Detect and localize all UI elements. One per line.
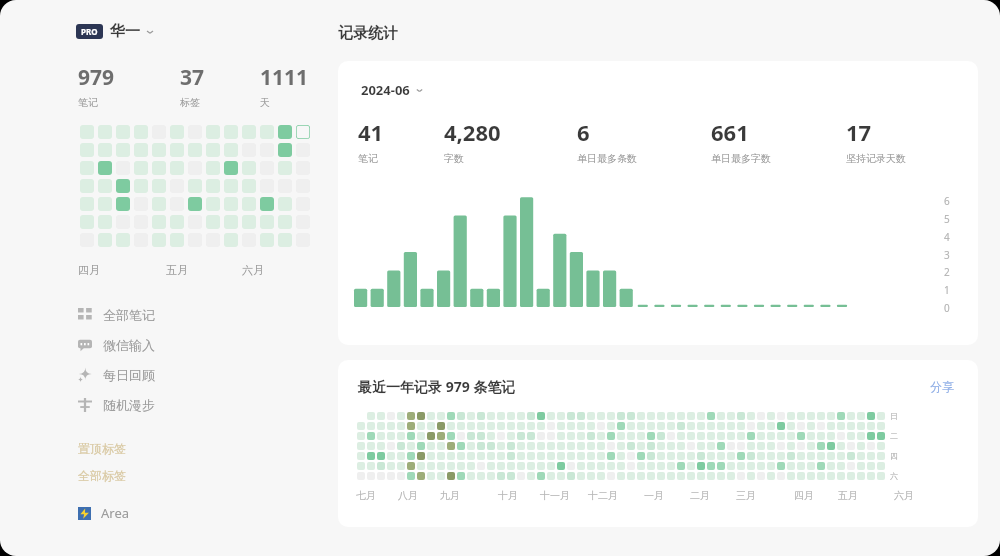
button[interactable]: 随机漫步 [70,390,290,420]
staticText: 二月 [690,489,710,502]
staticText: 单日最多条数 [577,152,637,165]
staticText: 十一月 [540,489,570,502]
staticText: 二 [890,431,898,440]
staticText: 六月 [894,489,914,502]
staticText: 十二月 [588,489,618,502]
button[interactable]: 全部笔记 [70,300,290,330]
button[interactable]: 置顶标签 [70,438,134,459]
staticText: 九月 [440,489,460,502]
staticText: 0 [944,301,950,315]
staticText: 1111 [260,63,309,92]
staticText: 全部笔记 [103,307,155,323]
staticText: 17 [846,117,872,147]
staticText: 1 [944,283,950,297]
staticText: 3 [944,248,950,262]
staticText: 坚持记录天数 [846,152,906,165]
staticText: 6 [577,117,590,147]
staticText: 八月 [398,489,418,502]
staticText: 记录统计 [338,24,398,43]
button[interactable]: PRO [74,20,157,43]
staticText: 四月 [794,489,814,502]
staticText: 标签 [180,96,200,109]
staticText: 随机漫步 [103,397,155,413]
staticText: 最近一年记录 979 条笔记 [358,377,516,396]
staticText: 五月 [166,263,188,277]
button[interactable]: 分享 [926,377,958,396]
staticText: 日 [890,411,898,420]
staticText: 单日最多字数 [711,152,771,165]
staticText: 2024-06 [361,81,410,99]
staticText: 六 [890,471,898,480]
staticText: 661 [711,117,749,147]
staticText: 五月 [838,489,858,502]
button[interactable]: 2024-06 [358,79,427,101]
button[interactable]: 全部标签 [70,465,134,486]
staticText: 华一 [110,22,140,41]
staticText: 四月 [78,263,100,277]
staticText: 字数 [444,152,464,165]
staticText: 三月 [736,489,756,502]
staticText: 6 [944,194,950,208]
staticText: Area [101,504,130,522]
staticText: 七月 [356,489,376,502]
staticText: 4,280 [444,117,501,147]
staticText: 笔记 [78,96,98,109]
button[interactable]: Area [70,500,138,526]
staticText: 每日回顾 [103,367,155,383]
staticText: 笔记 [358,152,378,165]
staticText: 天 [260,96,270,109]
staticText: 979 [78,63,115,92]
staticText: 全部标签 [78,468,126,483]
button[interactable]: 微信输入 [70,330,290,360]
staticText: 分享 [930,379,954,394]
staticText: 六月 [242,263,264,277]
staticText: 4 [944,230,950,244]
staticText: 41 [358,117,384,147]
staticText: 37 [180,63,205,92]
staticText: 十月 [498,489,518,502]
staticText: 5 [944,212,950,226]
button[interactable]: 每日回顾 [70,360,290,390]
staticText: 2 [944,265,950,279]
staticText: 四 [890,451,898,460]
staticText: 一月 [644,489,664,502]
staticText: 微信输入 [103,337,155,353]
staticText: 置顶标签 [78,441,126,456]
staticText: PRO [81,26,98,37]
